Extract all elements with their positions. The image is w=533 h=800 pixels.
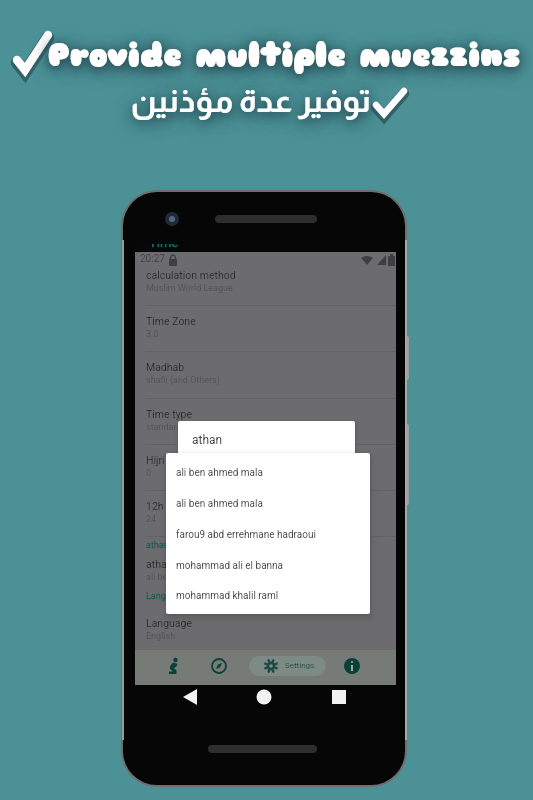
staticText: Language — [146, 617, 193, 629]
staticText: Madhab — [146, 361, 185, 373]
button[interactable]: ali ben ahmed mala — [166, 453, 370, 614]
staticText: ali ben ahmed mala — [146, 572, 225, 583]
staticText: athan — [146, 540, 169, 551]
staticText: mohammad ali el banna — [176, 560, 284, 572]
button[interactable]: mohammad khalil raml — [166, 582, 370, 612]
button[interactable]: Madhab — [135, 359, 396, 391]
button[interactable]: mohammad ali el banna — [166, 552, 370, 582]
button[interactable]: Time type — [135, 406, 396, 438]
staticText: Hijri date adjustment — [146, 454, 244, 466]
staticText: standard — [146, 422, 182, 433]
staticText: 24 — [146, 514, 157, 525]
button[interactable]: Language — [135, 615, 396, 647]
staticText: farou9 abd errehmane hadraoui — [176, 529, 316, 541]
button[interactable]: ali ben ahmed mala — [166, 490, 370, 520]
button[interactable]: calculation method — [135, 267, 396, 299]
staticText: Muslim World League — [146, 283, 233, 294]
staticText: 0 — [146, 468, 152, 479]
staticText: Provide multiple muezzins — [43, 36, 524, 75]
staticText: Time — [149, 244, 179, 250]
staticText: calculation method — [146, 269, 236, 281]
staticText: Provide multiple muezzins — [43, 36, 524, 75]
staticText: Time Zone — [146, 315, 196, 327]
staticText: 20:27 — [140, 253, 165, 265]
button[interactable] — [344, 658, 360, 674]
staticText: توفير عدة مؤذنين — [101, 83, 401, 119]
staticText: athan — [146, 558, 173, 570]
staticText: shafii (and Others) — [146, 375, 220, 386]
staticText: English — [146, 631, 176, 642]
staticText: Language — [146, 591, 186, 602]
button[interactable]: Time Zone — [135, 313, 396, 345]
staticText: توفير عدة مؤذنين — [101, 83, 401, 119]
staticText: athan — [192, 433, 223, 447]
staticText: 3.0 — [146, 329, 159, 340]
button[interactable]: ali ben ahmed mala — [166, 459, 370, 489]
button[interactable]: athan — [135, 556, 396, 588]
button[interactable]: Settings — [249, 656, 326, 676]
staticText: 12h / 24h format — [146, 500, 225, 512]
staticText: ali ben ahmed mala — [176, 467, 263, 479]
button[interactable]: 12h / 24h format — [135, 498, 396, 530]
staticText: mohammad khalil raml — [176, 590, 279, 602]
staticText: ali ben ahmed mala — [176, 498, 263, 510]
staticText: Settings — [285, 661, 315, 670]
staticText: Time type — [146, 408, 193, 420]
button[interactable]: farou9 abd errehmane hadraoui — [166, 521, 370, 551]
button[interactable]: Hijri date adjustment — [135, 452, 396, 484]
